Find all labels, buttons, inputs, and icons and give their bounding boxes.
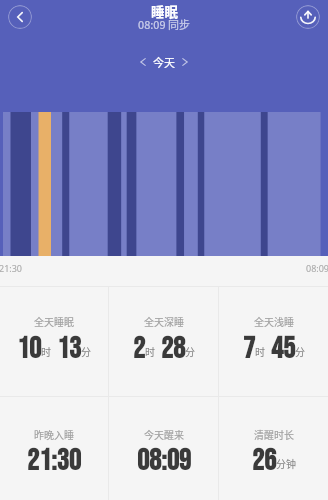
- staticText: 2: [133, 331, 145, 367]
- staticText: 分: [295, 344, 305, 358]
- button[interactable]: Upload: [296, 5, 320, 29]
- button[interactable]: Back: [8, 5, 32, 29]
- staticText: 28: [161, 331, 185, 367]
- staticText: 全天浅睡: [254, 314, 294, 328]
- button[interactable]: 清醒时长: [219, 396, 328, 500]
- staticText: 清醒时长: [254, 427, 294, 441]
- staticText: 08:09: [306, 262, 328, 274]
- staticText: 全天深睡: [144, 314, 184, 328]
- staticText: 21:30: [0, 262, 23, 274]
- staticText: 08:09 同步: [138, 16, 190, 32]
- staticText: 13: [57, 331, 81, 367]
- staticText: 时: [41, 344, 51, 358]
- staticText: 26: [252, 443, 276, 479]
- button[interactable]: 全天深睡: [109, 286, 218, 396]
- staticText: 分: [81, 344, 91, 358]
- staticText: 今天: [153, 54, 175, 70]
- staticText: 分钟: [276, 456, 296, 470]
- staticText: 时: [255, 344, 265, 358]
- staticText: 睡眠: [151, 1, 178, 21]
- button[interactable]: 全天浅睡: [219, 286, 328, 396]
- staticText: 全天睡眠: [34, 314, 74, 328]
- staticText: 21:30: [27, 443, 81, 479]
- staticText: 7: [243, 331, 255, 367]
- staticText: 时: [145, 344, 155, 358]
- button[interactable]: [0, 112, 328, 256]
- staticText: 昨晚入睡: [34, 427, 74, 441]
- button[interactable]: 昨晚入睡: [0, 396, 108, 500]
- staticText: 08:09: [137, 443, 191, 479]
- button[interactable]: 今天: [132, 51, 196, 73]
- staticText: 45: [271, 331, 295, 367]
- staticText: 10: [17, 331, 41, 367]
- button[interactable]: 今天醒来: [109, 396, 218, 500]
- staticText: 今天醒来: [144, 427, 184, 441]
- button[interactable]: 全天睡眠: [0, 286, 108, 396]
- staticText: 分: [185, 344, 195, 358]
